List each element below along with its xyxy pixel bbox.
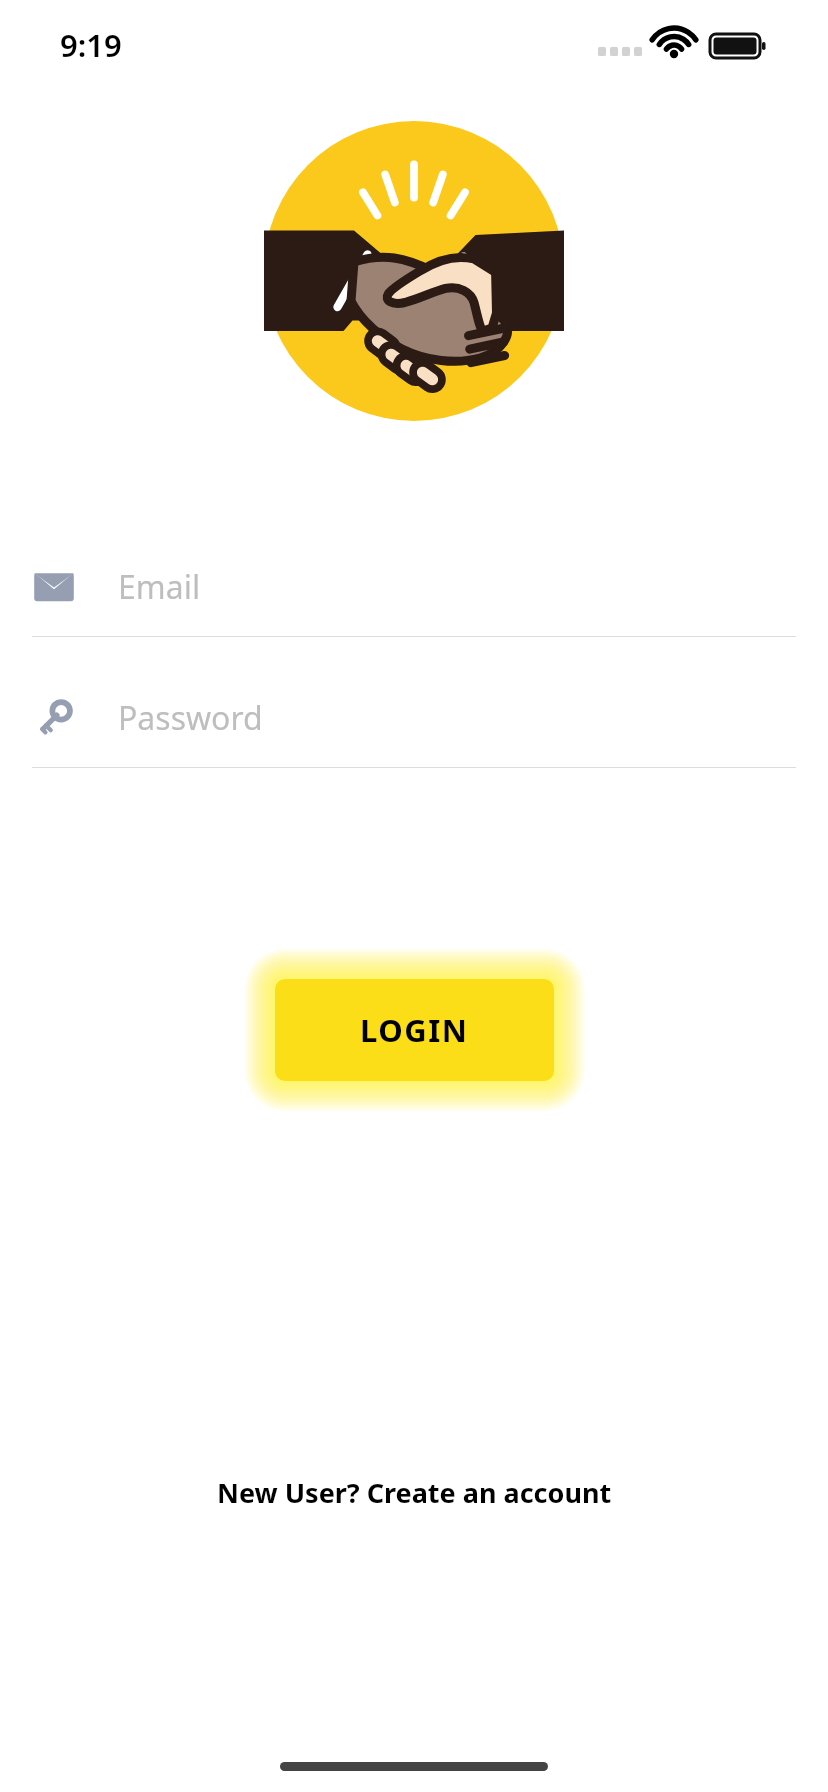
staticText: 9:19 — [60, 24, 122, 66]
other: Password — [32, 696, 76, 740]
button[interactable]: New User? Create an account — [207, 1466, 622, 1519]
button[interactable]: Password — [0, 679, 828, 768]
staticText: Email — [118, 565, 201, 609]
button[interactable]: LOGIN — [275, 979, 554, 1081]
staticText: New User? Create an account — [217, 1474, 612, 1511]
staticText: LOGIN — [360, 1009, 469, 1051]
staticText: Password — [118, 696, 263, 740]
button[interactable]: Email — [0, 548, 828, 637]
other: Email — [32, 565, 76, 609]
